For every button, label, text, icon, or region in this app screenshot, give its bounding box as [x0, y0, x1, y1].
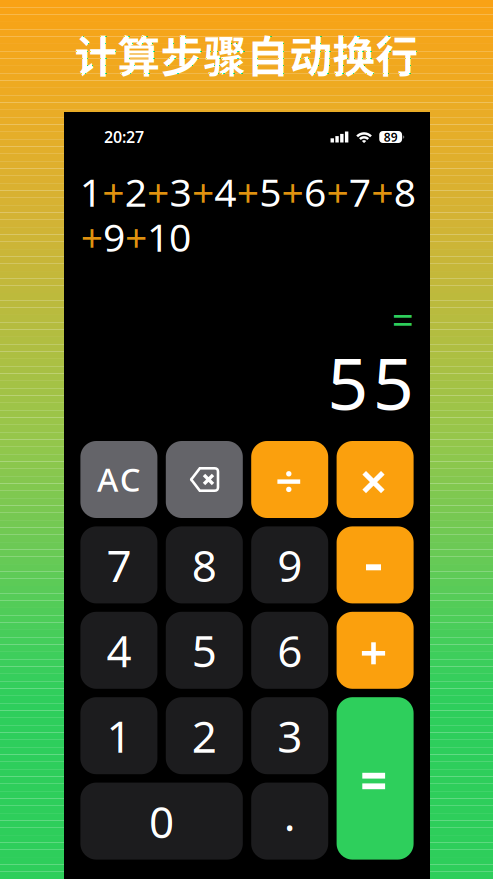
button[interactable]: 6 [251, 612, 328, 689]
staticText: 8 [192, 535, 217, 595]
staticText: 5 [259, 165, 281, 218]
staticText: = [392, 292, 414, 345]
staticText: 7 [106, 535, 131, 595]
staticText: + [192, 165, 214, 218]
staticText: 1 [80, 165, 102, 218]
staticText: 5 [192, 620, 217, 680]
staticText: 3 [169, 165, 191, 218]
staticText: 9 [277, 535, 302, 595]
staticText: 6 [277, 620, 302, 680]
staticText: + [237, 165, 259, 218]
button[interactable]: Plus [337, 612, 414, 689]
staticText: + [81, 210, 103, 263]
button[interactable]: 9 [251, 526, 328, 603]
staticText: 1 [106, 706, 131, 766]
button[interactable]: 3 [251, 697, 328, 774]
button[interactable]: Equals [337, 697, 414, 860]
button[interactable]: 20:27 [104, 126, 144, 148]
staticText: 6 [304, 165, 326, 218]
staticText: A [97, 457, 118, 501]
button[interactable]: Divide [251, 441, 328, 518]
staticText: + [282, 165, 304, 218]
staticText: 20:27 [104, 126, 144, 148]
button[interactable]: 0 [80, 783, 243, 860]
button[interactable]: 4 [80, 612, 157, 689]
button[interactable]: Minus [337, 526, 414, 603]
staticText: 计算步骤自动换行 [74, 23, 418, 85]
staticText: + [326, 165, 348, 218]
staticText: + [371, 165, 393, 218]
staticText: 89 [384, 129, 398, 145]
button[interactable]: 2 [166, 697, 243, 774]
staticText: 10 [147, 210, 191, 263]
staticText: C [120, 457, 141, 501]
staticText: + [125, 210, 147, 263]
staticText: 2 [125, 165, 147, 218]
button[interactable]: 8 [166, 526, 243, 603]
button[interactable]: 5 [166, 612, 243, 689]
staticText: 9 [103, 210, 125, 263]
staticText: 2 [192, 706, 217, 766]
staticText: 4 [106, 620, 131, 680]
staticText: 3 [277, 706, 302, 766]
staticText: 55 [327, 333, 414, 431]
button[interactable]: 7 [80, 526, 157, 603]
staticText: 0 [149, 791, 174, 851]
button[interactable]: 1 [80, 697, 157, 774]
button[interactable]: Multiply [337, 441, 414, 518]
staticText: 7 [349, 165, 371, 218]
staticText: + [147, 165, 169, 218]
staticText: 8 [394, 165, 416, 218]
staticText: 4 [214, 165, 236, 218]
staticText: . [284, 784, 296, 844]
button[interactable]: A [80, 441, 157, 518]
button[interactable]: . [251, 783, 328, 860]
button[interactable]: Delete [166, 441, 243, 518]
staticText: + [102, 165, 124, 218]
